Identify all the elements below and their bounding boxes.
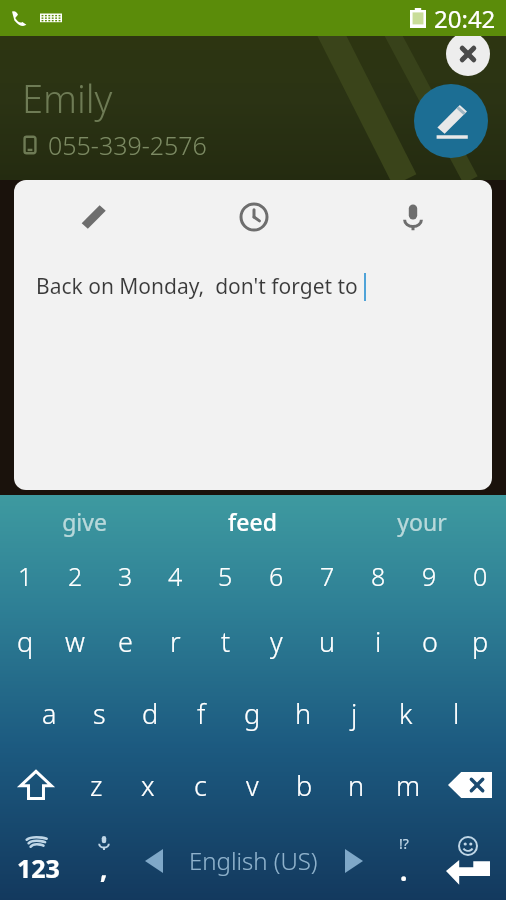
staticText: p: [472, 623, 489, 660]
staticText: 0: [473, 559, 488, 593]
button[interactable]: e: [100, 605, 150, 677]
button[interactable]: j: [329, 677, 380, 749]
button[interactable]: Close: [446, 32, 490, 76]
staticText: m: [396, 767, 421, 804]
button[interactable]: p: [455, 605, 506, 677]
staticText: f: [197, 695, 206, 732]
staticText: feed: [228, 506, 277, 537]
staticText: Emily: [22, 72, 113, 124]
staticText: 00:09: [434, 12, 490, 42]
button[interactable]: g: [227, 677, 278, 749]
button[interactable]: 1: [0, 547, 50, 605]
staticText: d: [142, 695, 159, 732]
button[interactable]: r: [150, 605, 200, 677]
staticText: b: [296, 767, 313, 804]
button[interactable]: b: [278, 749, 330, 821]
staticText: 123: [17, 851, 60, 885]
button[interactable]: Enter: [430, 821, 506, 900]
button[interactable]: Backspace: [434, 749, 506, 821]
button[interactable]: 2: [50, 547, 100, 605]
staticText: q: [17, 623, 34, 660]
button[interactable]: i: [353, 605, 404, 677]
staticText: c: [194, 767, 207, 804]
button[interactable]: h: [278, 677, 329, 749]
button[interactable]: q: [0, 605, 50, 677]
button[interactable]: d: [125, 677, 176, 749]
staticText: i: [375, 623, 382, 660]
button[interactable]: u: [302, 605, 353, 677]
button[interactable]: 3: [100, 547, 150, 605]
button[interactable]: k: [380, 677, 431, 749]
button[interactable]: z: [71, 749, 122, 821]
button[interactable]: Insert time: [174, 180, 333, 254]
staticText: j: [351, 695, 358, 732]
staticText: !?: [399, 834, 409, 853]
staticText: 5: [218, 559, 233, 593]
button[interactable]: t: [200, 605, 251, 677]
staticText: w: [65, 623, 85, 660]
button[interactable]: 5: [200, 547, 251, 605]
staticText: x: [141, 767, 155, 804]
button[interactable]: !?: [377, 821, 430, 900]
button[interactable]: 9: [404, 547, 455, 605]
staticText: a: [42, 695, 57, 732]
button[interactable]: Next language: [330, 821, 377, 900]
button[interactable]: Symbols: [0, 821, 77, 900]
staticText: y: [270, 623, 283, 660]
button[interactable]: f: [176, 677, 227, 749]
button[interactable]: l: [431, 677, 482, 749]
staticText: 1: [18, 559, 33, 593]
staticText: l: [453, 695, 460, 732]
button[interactable]: Shift: [0, 749, 71, 821]
button[interactable]: c: [174, 749, 226, 821]
staticText: t: [221, 623, 231, 660]
button[interactable]: y: [251, 605, 302, 677]
button[interactable]: v: [226, 749, 278, 821]
button[interactable]: Draw: [14, 180, 174, 254]
staticText: give: [62, 506, 107, 537]
button[interactable]: Previous language: [130, 821, 177, 900]
staticText: .: [400, 853, 408, 888]
staticText: Back on Monday, don't forget to: [36, 272, 364, 301]
staticText: h: [295, 695, 312, 732]
button[interactable]: 4: [150, 547, 200, 605]
button[interactable]: ,: [77, 821, 130, 900]
button[interactable]: Voice input: [333, 180, 492, 254]
button[interactable]: English (US): [177, 821, 330, 900]
staticText: s: [93, 695, 106, 732]
staticText: g: [244, 695, 261, 732]
button[interactable]: your: [337, 495, 506, 547]
staticText: English (US): [189, 844, 318, 877]
button[interactable]: 6: [251, 547, 302, 605]
staticText: 6: [269, 559, 284, 593]
button[interactable]: give: [0, 495, 168, 547]
staticText: 4: [168, 559, 183, 593]
staticText: 3: [118, 559, 133, 593]
staticText: e: [118, 623, 133, 660]
button[interactable]: feed: [168, 495, 337, 547]
button[interactable]: s: [74, 677, 125, 749]
button[interactable]: x: [122, 749, 174, 821]
button[interactable]: 8: [353, 547, 404, 605]
staticText: 7: [320, 559, 335, 593]
staticText: z: [90, 767, 103, 804]
staticText: 2: [68, 559, 83, 593]
staticText: k: [399, 695, 413, 732]
staticText: u: [319, 623, 336, 660]
button[interactable]: o: [404, 605, 455, 677]
staticText: o: [422, 623, 438, 660]
button[interactable]: w: [50, 605, 100, 677]
button[interactable]: 7: [302, 547, 353, 605]
staticText: your: [397, 506, 447, 537]
staticText: 9: [422, 559, 437, 593]
staticText: v: [246, 767, 259, 804]
staticText: ,: [100, 851, 108, 886]
button[interactable]: Memo: [414, 84, 488, 158]
button[interactable]: m: [382, 749, 434, 821]
button[interactable]: 0: [455, 547, 506, 605]
staticText: 20:42: [434, 2, 496, 35]
button[interactable]: a: [24, 677, 74, 749]
button[interactable]: n: [330, 749, 382, 821]
staticText: n: [348, 767, 365, 804]
staticText: r: [170, 623, 181, 660]
